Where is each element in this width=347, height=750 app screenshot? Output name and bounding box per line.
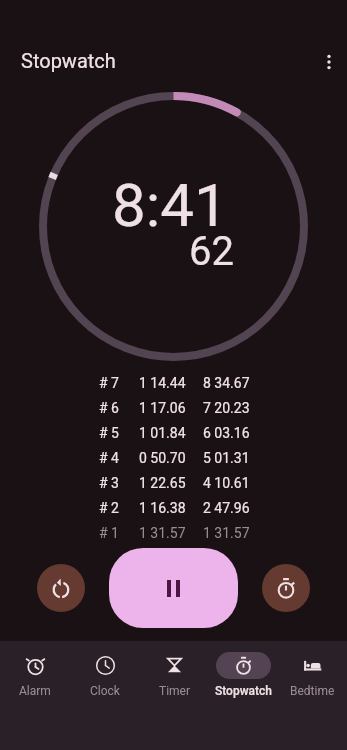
staticText: # 3 (99, 475, 119, 491)
staticText: # 2 (99, 500, 119, 516)
staticText: Alarm (19, 684, 51, 698)
button[interactable]: Pause (109, 548, 238, 628)
staticText: 1 22.65 (139, 475, 186, 491)
staticText: # 1 (99, 525, 119, 541)
button[interactable]: Stopwatch (8, 24, 188, 96)
staticText: 6 03.16 (203, 425, 250, 441)
staticText: Stopwatch (21, 49, 116, 72)
button[interactable]: Timer (140, 641, 209, 750)
button[interactable]: Stopwatch (209, 641, 278, 750)
button[interactable]: Reset (37, 564, 85, 612)
staticText: 8 34.67 (203, 375, 250, 391)
staticText: 1 31.57 (139, 525, 186, 541)
button[interactable]: Clock (70, 641, 140, 750)
staticText: # 5 (99, 425, 119, 441)
staticText: Clock (90, 684, 120, 698)
staticText: Stopwatch (215, 684, 272, 698)
button[interactable]: Alarm (0, 641, 70, 750)
staticText: 62 (189, 228, 234, 275)
staticText: 4 10.61 (203, 475, 250, 491)
staticText: Timer (159, 684, 191, 698)
staticText: Bedtime (290, 684, 335, 698)
staticText: 8:41 (112, 170, 228, 240)
staticText: 0 50.70 (139, 450, 186, 466)
staticText: 7 20.23 (203, 400, 250, 416)
button[interactable]: Lap (262, 564, 310, 612)
button[interactable]: Bedtime (278, 641, 347, 750)
button[interactable]: More options (306, 39, 347, 84)
staticText: # 6 (99, 400, 119, 416)
staticText: # 4 (99, 450, 119, 466)
staticText: # 7 (99, 375, 119, 391)
staticText: 1 14.44 (139, 375, 186, 391)
staticText: 1 31.57 (203, 525, 250, 541)
staticText: 2 47.96 (203, 500, 250, 516)
staticText: 1 16.38 (139, 500, 186, 516)
staticText: 1 17.06 (139, 400, 186, 416)
staticText: 1 01.84 (139, 425, 186, 441)
staticText: 5 01.31 (203, 450, 250, 466)
